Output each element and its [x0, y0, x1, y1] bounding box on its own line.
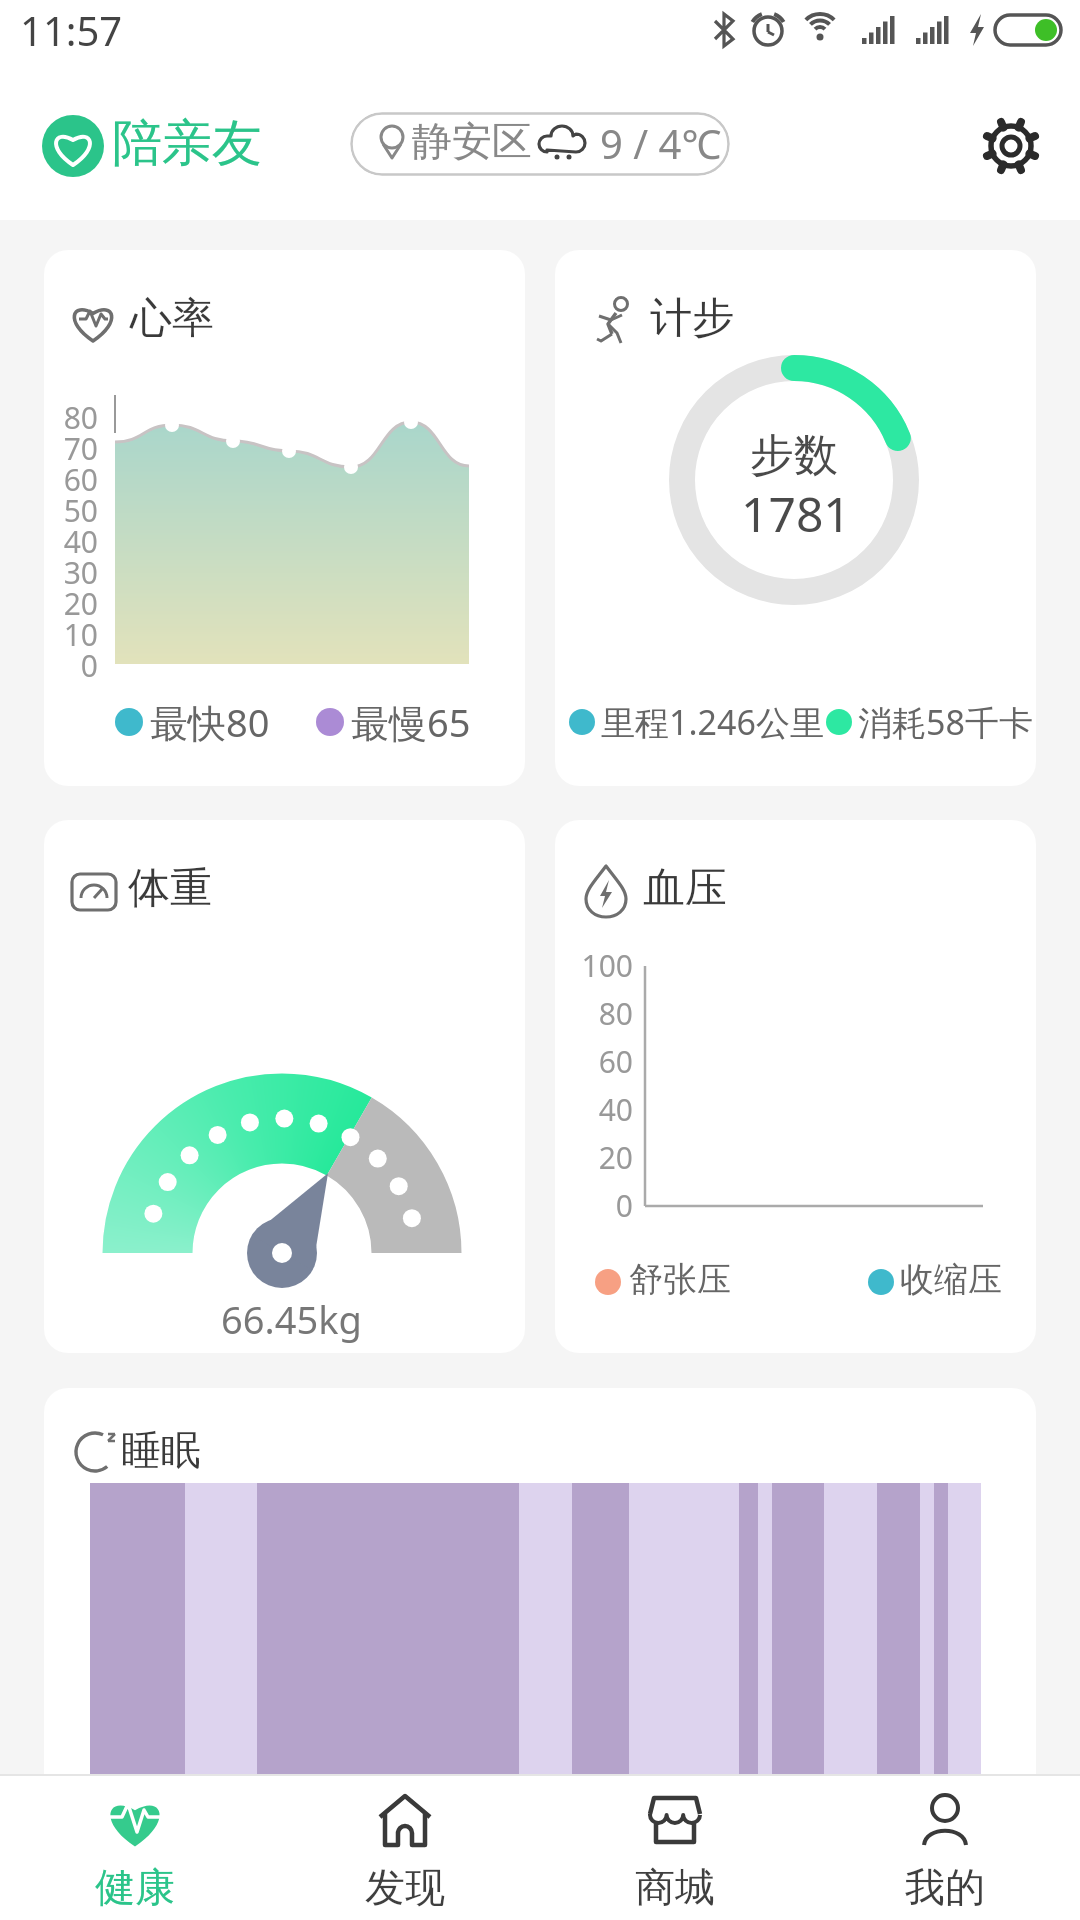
staticText: 60: [63, 459, 98, 500]
button[interactable]: 计步: [555, 250, 1036, 786]
staticText: 发现: [365, 1862, 445, 1912]
staticText: 50: [63, 490, 98, 531]
staticText: 0: [80, 645, 98, 686]
staticText: 我的: [905, 1862, 985, 1912]
staticText: 计步: [650, 292, 734, 345]
staticText: 步数: [750, 428, 838, 483]
button[interactable]: 静安区: [350, 112, 730, 176]
staticText: 心率: [130, 292, 214, 345]
staticText: 商城: [635, 1862, 715, 1912]
staticText: 9 / 4℃: [600, 116, 722, 170]
staticText: 陪亲友: [112, 112, 262, 175]
button[interactable]: 体重: [44, 820, 525, 1353]
staticText: 100: [581, 945, 633, 986]
staticText: 0: [615, 1185, 633, 1226]
button[interactable]: 我的: [810, 1776, 1080, 1920]
staticText: 70: [63, 428, 98, 469]
staticText: 体重: [128, 862, 212, 915]
staticText: 66.45kg: [221, 1293, 362, 1345]
staticText: 收缩压: [900, 1258, 1002, 1301]
staticText: 消耗58千卡: [858, 699, 1033, 745]
staticText: 最快80: [150, 696, 270, 748]
staticText: 睡眠: [121, 1425, 201, 1475]
staticText: 舒张压: [629, 1258, 731, 1301]
staticText: 健康: [95, 1862, 175, 1912]
button[interactable]: 血压: [555, 820, 1036, 1353]
staticText: 40: [598, 1089, 633, 1130]
staticText: 60: [598, 1041, 633, 1082]
staticText: 30: [63, 552, 98, 593]
staticText: 80: [63, 397, 98, 438]
staticText: 20: [598, 1137, 633, 1178]
staticText: 20: [63, 583, 98, 624]
staticText: 1781: [741, 481, 851, 546]
staticText: 静安区: [412, 116, 532, 166]
staticText: 最慢65: [351, 696, 471, 748]
button[interactable]: 健康: [0, 1776, 270, 1920]
staticText: 40: [63, 521, 98, 562]
staticText: 血压: [643, 862, 727, 915]
button[interactable]: 睡眠: [44, 1388, 1036, 1774]
button[interactable]: [976, 111, 1046, 181]
staticText: 10: [63, 614, 98, 655]
staticText: 80: [598, 993, 633, 1034]
button[interactable]: 心率: [44, 250, 525, 786]
staticText: 11:57: [20, 3, 123, 57]
button[interactable]: 发现: [270, 1776, 540, 1920]
button[interactable]: 商城: [540, 1776, 810, 1920]
staticText: 里程1.246公里: [601, 699, 824, 745]
